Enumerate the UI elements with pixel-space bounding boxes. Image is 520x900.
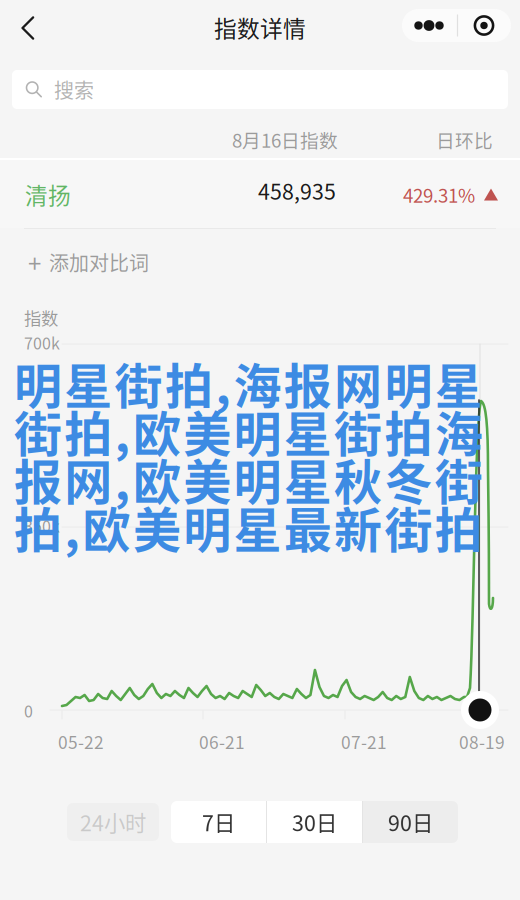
staticText: 07-21 bbox=[341, 729, 387, 754]
staticText: 05-22 bbox=[58, 729, 104, 754]
button[interactable]: Back bbox=[2, 2, 54, 54]
staticText: 30日 bbox=[292, 807, 337, 837]
staticText: 街拍,欧美明星街拍海 bbox=[14, 396, 483, 465]
button[interactable]: 7日 bbox=[171, 801, 266, 843]
staticText: 指数 bbox=[24, 305, 58, 330]
staticText: 日环比 bbox=[436, 126, 493, 153]
button[interactable]: More options bbox=[402, 9, 456, 42]
staticText: 06-21 bbox=[199, 729, 245, 754]
staticText: 添加对比词 bbox=[49, 247, 149, 276]
staticText: 90日 bbox=[388, 807, 433, 837]
staticText: 明星街拍,海报网明星 bbox=[14, 348, 483, 417]
staticText: 700k bbox=[24, 331, 60, 354]
staticText: 清扬 bbox=[25, 178, 71, 211]
staticText: 7日 bbox=[202, 807, 235, 837]
button[interactable]: 30日 bbox=[267, 801, 362, 843]
staticText: 350k bbox=[24, 514, 60, 537]
staticText: 搜索 bbox=[54, 75, 94, 104]
staticText: 指数详情 bbox=[214, 11, 306, 44]
staticText: 24小时 bbox=[80, 807, 146, 837]
staticText: 429.31% bbox=[403, 181, 475, 208]
staticText: 0 bbox=[24, 699, 33, 722]
button[interactable]: 24小时 bbox=[67, 803, 159, 841]
button[interactable]: Close mini program bbox=[457, 9, 511, 42]
button[interactable]: + bbox=[0, 238, 320, 286]
staticText: 拍,欧美明星最新街拍 bbox=[14, 492, 483, 561]
staticText: 8月16日指数 bbox=[232, 126, 338, 153]
staticText: 报网,欧美明星秋冬街 bbox=[14, 444, 483, 513]
staticText: 08-19 bbox=[459, 729, 505, 754]
staticText: 458,935 bbox=[258, 175, 336, 206]
button[interactable]: 90日 bbox=[363, 801, 458, 843]
button[interactable]: 搜索 bbox=[12, 70, 508, 109]
staticText: + bbox=[28, 245, 41, 279]
